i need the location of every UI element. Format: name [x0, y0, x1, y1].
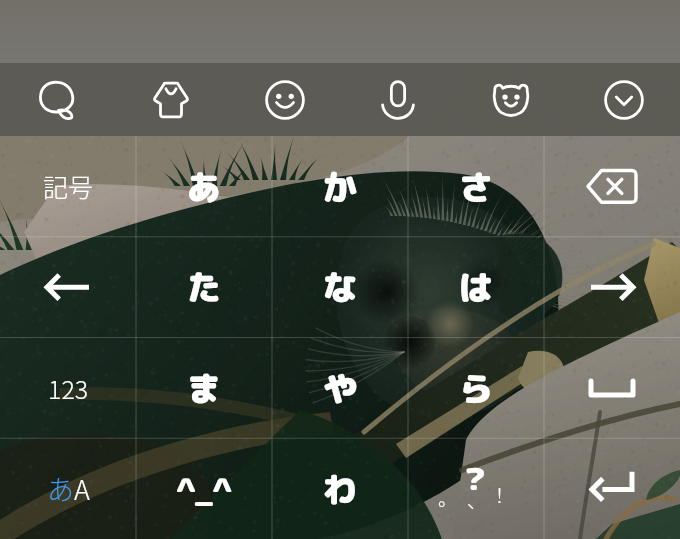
- button[interactable]: さ: [408, 136, 544, 236]
- staticText: や: [323, 364, 357, 411]
- staticText: 。: [438, 484, 458, 512]
- button[interactable]: ^_^: [136, 438, 272, 539]
- button[interactable]: は: [408, 236, 544, 337]
- button[interactable]: 123: [0, 337, 136, 438]
- button[interactable]: か: [272, 136, 408, 236]
- button[interactable]: や: [272, 337, 408, 438]
- button[interactable]: [544, 236, 680, 337]
- button[interactable]: Search: [0, 63, 114, 136]
- button[interactable]: Stickers: [454, 63, 567, 136]
- button[interactable]: Theme: [114, 63, 228, 136]
- button[interactable]: [544, 136, 680, 236]
- button[interactable]: [544, 438, 680, 539]
- staticText: あA: [47, 469, 90, 508]
- button[interactable]: Hide keyboard: [567, 63, 680, 136]
- staticText: 123: [48, 370, 89, 406]
- button[interactable]: あ: [136, 136, 272, 236]
- staticText: わ: [323, 465, 357, 512]
- staticText: ま: [187, 364, 221, 411]
- button[interactable]: た: [136, 236, 272, 337]
- staticText: な: [323, 263, 357, 310]
- button[interactable]: わ: [272, 438, 408, 539]
- staticText: 記号: [43, 168, 94, 204]
- staticText: ^_^: [176, 469, 232, 509]
- button[interactable]: Voice input: [341, 63, 454, 136]
- staticText: あ: [187, 163, 221, 210]
- button[interactable]: な: [272, 236, 408, 337]
- staticText: ら: [459, 364, 493, 411]
- staticText: ？: [460, 458, 490, 500]
- staticText: は: [459, 263, 493, 310]
- button[interactable]: [544, 337, 680, 438]
- button[interactable]: [0, 236, 136, 337]
- button[interactable]: ま: [136, 337, 272, 438]
- staticText: た: [187, 263, 221, 310]
- staticText: 、: [467, 486, 487, 514]
- button[interactable]: Emoji: [228, 63, 341, 136]
- staticText: か: [323, 163, 357, 210]
- staticText: ！: [490, 481, 510, 509]
- button[interactable]: 記号: [0, 136, 136, 236]
- button[interactable]: あA: [0, 438, 136, 539]
- staticText: さ: [459, 163, 493, 210]
- button[interactable]: ？: [408, 438, 544, 539]
- button[interactable]: ら: [408, 337, 544, 438]
